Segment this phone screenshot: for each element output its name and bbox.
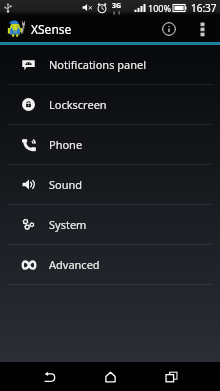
button[interactable]: Back xyxy=(19,362,80,391)
button[interactable]: More options xyxy=(185,15,220,42)
button[interactable]: Info xyxy=(152,15,185,42)
staticText: Lockscreen xyxy=(49,97,107,112)
button[interactable]: Lockscreen xyxy=(0,85,220,124)
button[interactable]: Notifications panel xyxy=(0,45,220,84)
button[interactable]: Advanced xyxy=(0,245,220,284)
button[interactable]: Home xyxy=(80,362,141,391)
button[interactable]: Phone xyxy=(0,125,220,164)
button[interactable]: Sound xyxy=(0,165,220,204)
staticText: Notifications panel xyxy=(49,57,147,72)
staticText: Phone xyxy=(49,137,83,152)
staticText: XSense xyxy=(31,21,72,37)
staticText: 100% xyxy=(148,2,171,14)
button[interactable]: System xyxy=(0,205,220,244)
staticText: System xyxy=(49,217,87,232)
staticText: Advanced xyxy=(49,257,100,272)
staticText: 3G xyxy=(112,1,122,11)
staticText: 16:37 xyxy=(191,1,217,15)
staticText: Sound xyxy=(49,177,83,192)
button[interactable]: Recents xyxy=(141,362,202,391)
